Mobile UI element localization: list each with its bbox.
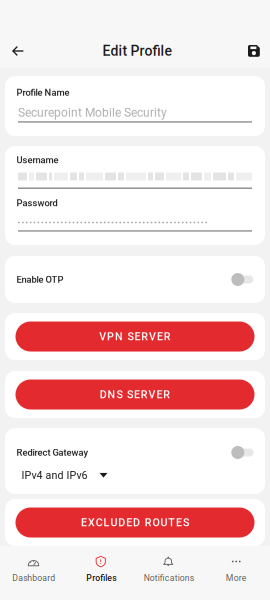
staticText: More xyxy=(226,573,247,583)
staticText: Dashboard xyxy=(12,573,55,583)
button[interactable]: Profiles xyxy=(67,546,135,600)
staticText: Username xyxy=(16,154,58,165)
button[interactable]: Back xyxy=(0,33,36,69)
button[interactable]: VPN SERVER xyxy=(5,313,265,360)
staticText: Edit Profile xyxy=(102,43,171,59)
staticText: Notifications xyxy=(144,573,194,583)
staticText: VPN SERVER xyxy=(99,330,171,343)
staticText: Profile Name xyxy=(16,87,69,98)
button[interactable]: EXCLUDED ROUTES xyxy=(5,499,265,546)
staticText: Profiles xyxy=(86,573,116,583)
staticText: Securepoint Mobile Security xyxy=(18,105,167,120)
staticText: Password xyxy=(16,197,57,208)
button[interactable]: Dashboard xyxy=(0,546,67,600)
staticText: Enable OTP xyxy=(16,274,63,285)
button[interactable]: Notifications xyxy=(135,546,202,600)
staticText: Redirect Gateway xyxy=(16,447,88,458)
button[interactable]: IPv4 and IPv6 xyxy=(16,459,107,481)
staticText: DNS SERVER xyxy=(100,388,170,401)
button[interactable]: DNS SERVER xyxy=(5,371,265,418)
button[interactable]: Save xyxy=(236,33,270,69)
staticText: EXCLUDED ROUTES xyxy=(81,516,189,529)
button[interactable]: More xyxy=(202,546,270,600)
staticText: IPv4 and IPv6 xyxy=(21,469,87,481)
